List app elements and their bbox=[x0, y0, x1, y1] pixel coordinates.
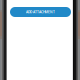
staticText: ADD ATTACHMENT bbox=[26, 10, 55, 14]
button[interactable]: ADD ATTACHMENT bbox=[10, 7, 71, 17]
